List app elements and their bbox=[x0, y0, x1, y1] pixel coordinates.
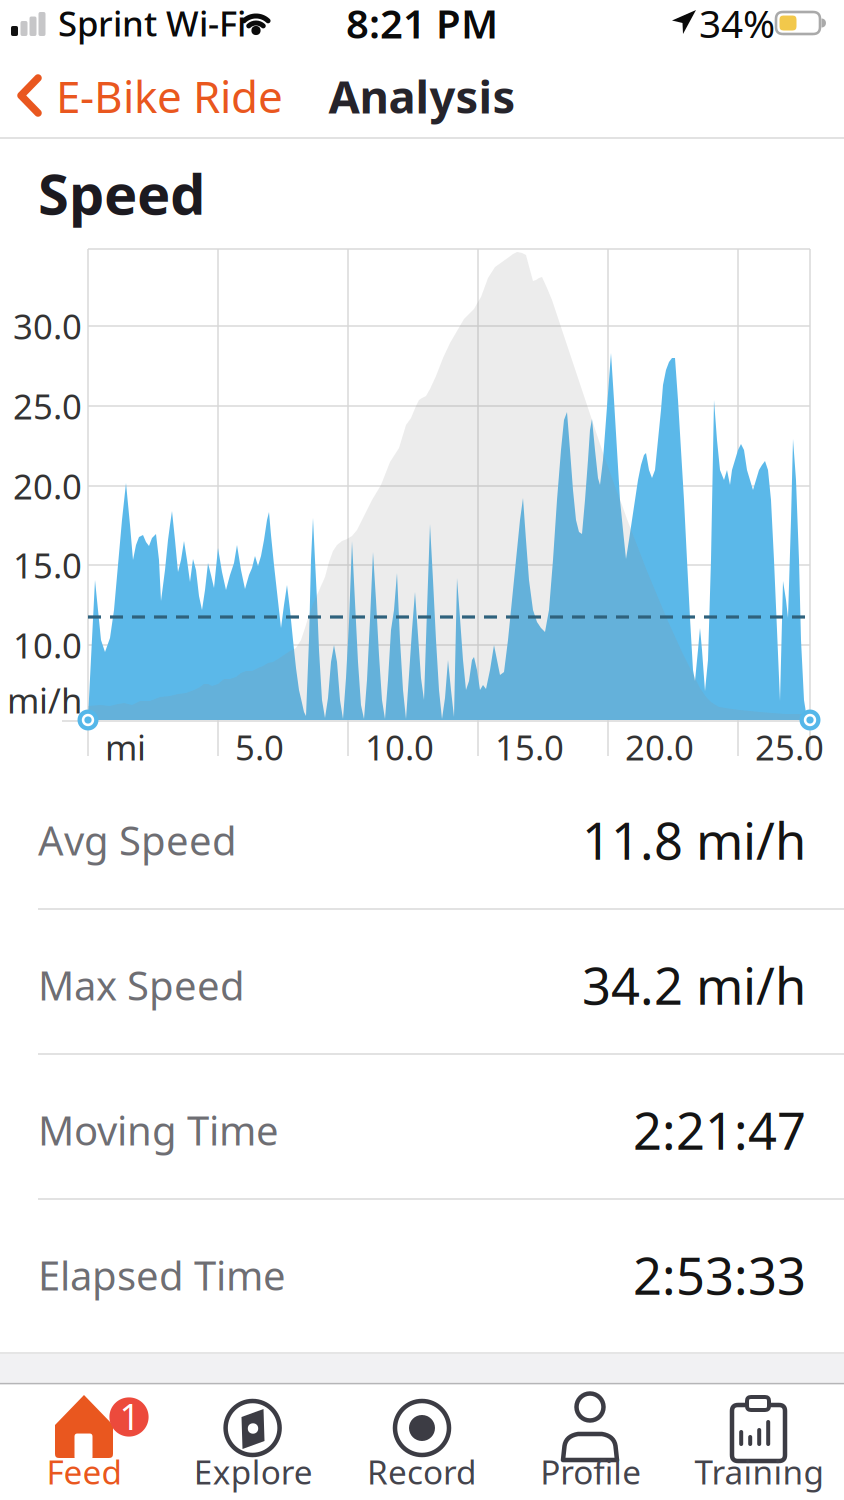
staticText: 11.8 mi/h bbox=[582, 806, 806, 874]
staticText: 34% bbox=[699, 0, 775, 49]
staticText: 2:21:47 bbox=[633, 1096, 806, 1164]
staticText: 20.0 bbox=[625, 724, 694, 770]
staticText: Record bbox=[367, 1449, 477, 1494]
staticText: 25.0 bbox=[13, 383, 82, 429]
button[interactable]: E-Bike Ride bbox=[19, 67, 283, 125]
button[interactable]: Training bbox=[675, 1384, 844, 1500]
staticText: 15.0 bbox=[495, 724, 564, 770]
staticText: 10.0 bbox=[365, 724, 434, 770]
staticText: E-Bike Ride bbox=[56, 67, 283, 125]
staticText: 34.2 mi/h bbox=[582, 951, 806, 1019]
staticText: Analysis bbox=[328, 66, 515, 126]
staticText: 30.0 bbox=[13, 303, 82, 349]
button[interactable]: Explore bbox=[169, 1384, 338, 1500]
staticText: 8:21 PM bbox=[346, 0, 498, 49]
staticText: Sprint Wi-Fi bbox=[58, 0, 246, 46]
staticText: Speed bbox=[38, 156, 205, 230]
button[interactable]: Profile bbox=[506, 1384, 675, 1500]
staticText: mi bbox=[105, 724, 146, 770]
staticText: Explore bbox=[194, 1449, 313, 1494]
staticText: 20.0 bbox=[13, 463, 82, 509]
staticText: 1 bbox=[119, 1392, 140, 1440]
staticText: 10.0 bbox=[13, 622, 82, 668]
staticText: 15.0 bbox=[13, 542, 82, 588]
staticText: 25.0 bbox=[755, 724, 824, 770]
staticText: 2:53:33 bbox=[633, 1241, 806, 1309]
staticText: mi/h bbox=[7, 677, 82, 723]
staticText: Max Speed bbox=[38, 958, 245, 1011]
button[interactable]: Record bbox=[338, 1384, 506, 1500]
staticText: Feed bbox=[46, 1449, 122, 1494]
staticText: Elapsed Time bbox=[38, 1248, 286, 1301]
staticText: Avg Speed bbox=[38, 813, 237, 866]
staticText: 5.0 bbox=[235, 724, 284, 770]
staticText: Moving Time bbox=[38, 1103, 279, 1156]
staticText: Profile bbox=[540, 1449, 641, 1494]
button[interactable]: Feed bbox=[0, 1384, 169, 1500]
staticText: Training bbox=[695, 1449, 825, 1494]
